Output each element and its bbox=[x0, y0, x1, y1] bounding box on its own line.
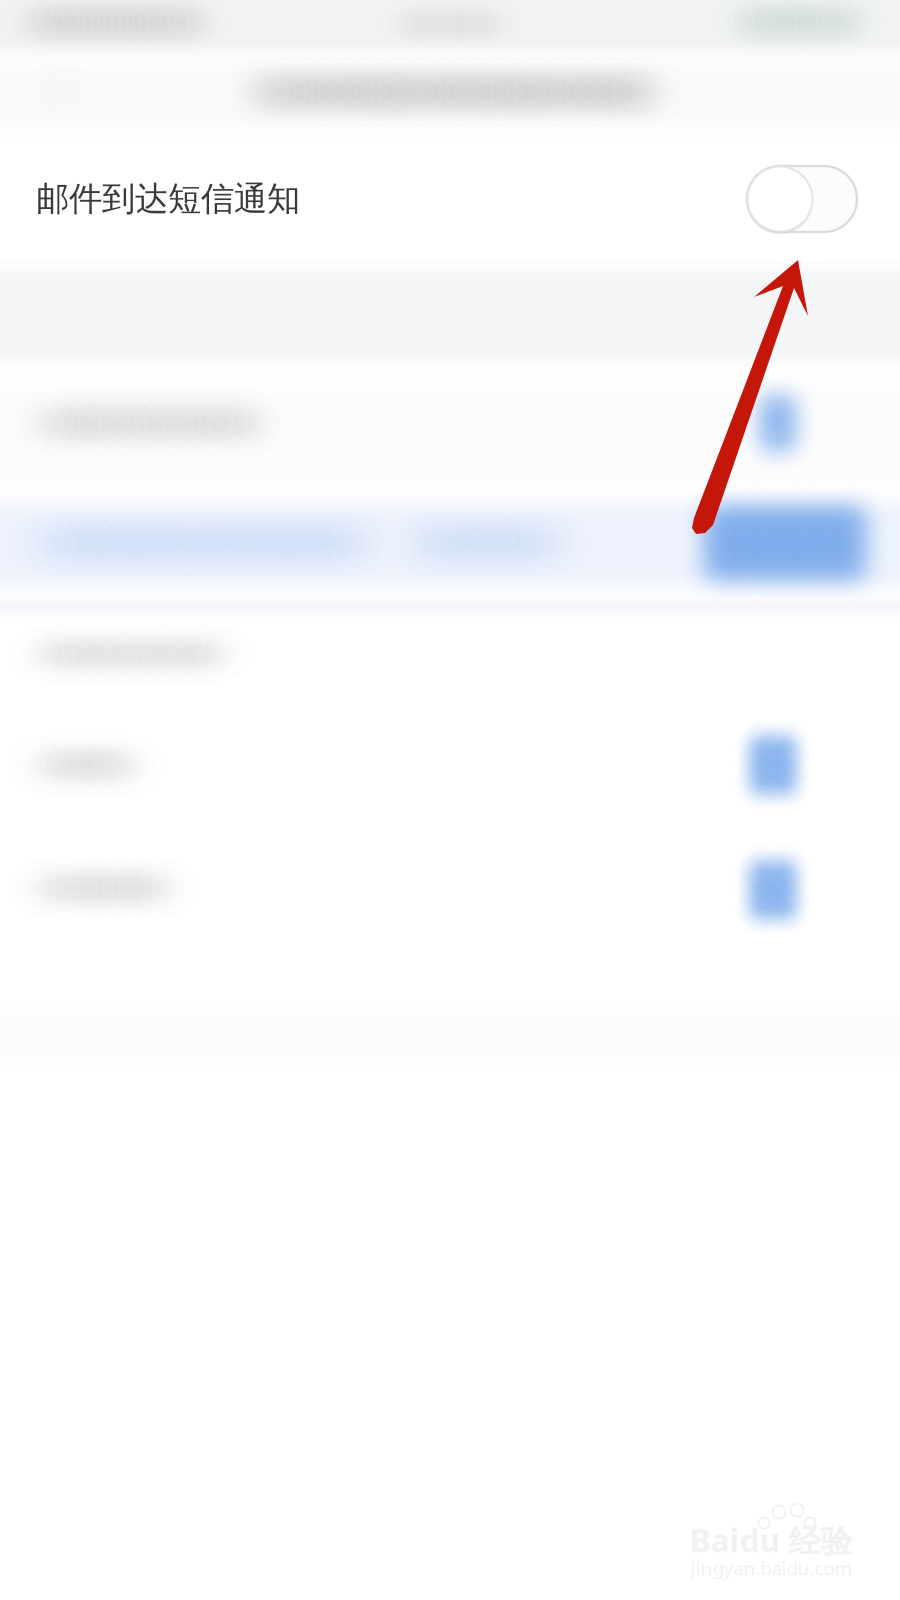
staticText: Baidu 经验 bbox=[689, 1519, 852, 1561]
staticText: jingyan.baidu.com bbox=[690, 1556, 851, 1580]
staticText: 邮件到达短信通知 bbox=[36, 178, 300, 219]
button[interactable]: 邮件到达短信通知 bbox=[0, 141, 900, 257]
